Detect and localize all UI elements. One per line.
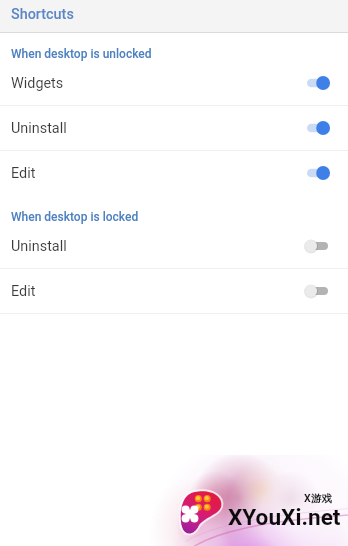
staticText: Edit xyxy=(11,283,305,300)
button[interactable]: Uninstall xyxy=(0,224,348,268)
staticText: Uninstall xyxy=(11,238,305,255)
button[interactable]: Shortcuts xyxy=(0,0,348,32)
button[interactable]: Widgets xyxy=(0,61,348,105)
other: Enabled xyxy=(305,74,333,92)
staticText: Widgets xyxy=(11,75,305,92)
staticText: XYouXi.net xyxy=(228,504,341,530)
other: Disabled xyxy=(305,282,333,300)
staticText: X游戏 xyxy=(304,492,332,505)
staticText: When desktop is unlocked xyxy=(11,47,152,61)
button[interactable]: Uninstall xyxy=(0,106,348,150)
button[interactable]: Edit xyxy=(0,269,348,313)
staticText: When desktop is locked xyxy=(11,210,139,224)
other: Enabled xyxy=(305,164,333,182)
staticText: Edit xyxy=(11,165,305,182)
other: Enabled xyxy=(305,119,333,137)
staticText: Uninstall xyxy=(11,120,305,137)
button[interactable]: Edit xyxy=(0,151,348,195)
other: Disabled xyxy=(305,237,333,255)
staticText: Shortcuts xyxy=(11,6,74,23)
